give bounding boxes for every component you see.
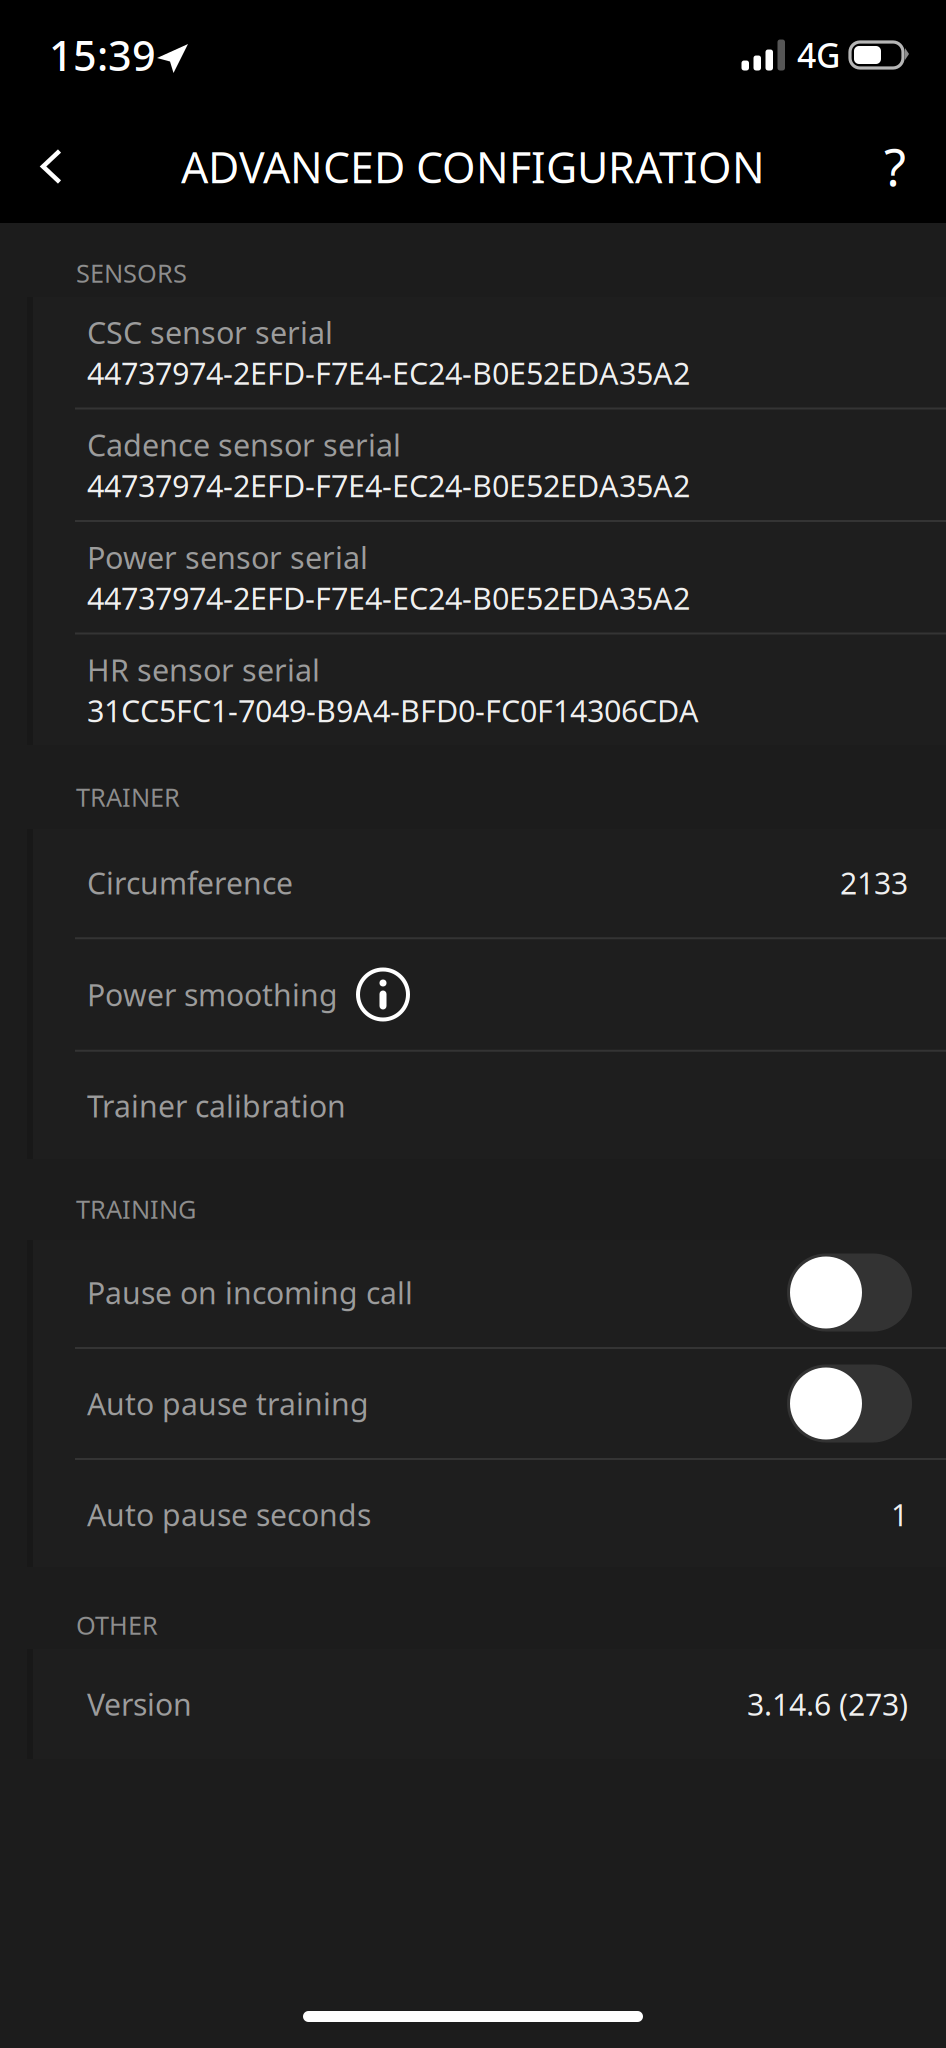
staticText: ? (884, 133, 906, 200)
button[interactable]: Trainer calibration (33, 1052, 946, 1160)
staticText: 3.14.6 (273) (747, 1684, 908, 1724)
staticText: 31CC5FC1-7049-B9A4-BFD0-FC0F14306CDA (87, 690, 699, 730)
button[interactable]: Back (0, 110, 100, 223)
staticText: Auto pause training (87, 1383, 369, 1423)
staticText: 1 (891, 1494, 908, 1534)
button[interactable]: Power sensor serial (33, 522, 946, 632)
button[interactable]: Pause on incoming call (33, 1238, 946, 1347)
staticText: ADVANCED CONFIGURATION (181, 138, 765, 195)
staticText: 44737974-2EFD-F7E4-EC24-B0E52EDA35A2 (87, 352, 690, 393)
button[interactable]: Power smoothing (33, 939, 946, 1050)
staticText: OTHER (76, 1608, 158, 1634)
staticText: Circumference (87, 863, 293, 903)
button[interactable]: Version (33, 1649, 946, 1759)
button[interactable]: Circumference (33, 828, 946, 937)
staticText: SENSORS (76, 256, 187, 282)
staticText: Power sensor serial (87, 537, 368, 577)
button[interactable]: HR sensor serial (33, 634, 946, 745)
button[interactable]: Auto pause seconds (33, 1460, 946, 1569)
staticText: 15:39 (49, 28, 156, 82)
staticText: CSC sensor serial (87, 312, 333, 352)
staticText: 44737974-2EFD-F7E4-EC24-B0E52EDA35A2 (87, 577, 690, 618)
button[interactable]: Help (851, 113, 946, 219)
staticText: 2133 (840, 863, 908, 903)
staticText: Version (87, 1684, 192, 1724)
staticText: HR sensor serial (87, 649, 320, 690)
staticText: Trainer calibration (87, 1086, 346, 1126)
staticText: 4G (797, 33, 841, 77)
staticText: Cadence sensor serial (87, 424, 401, 465)
staticText: TRAINING (76, 1192, 196, 1218)
staticText: Pause on incoming call (87, 1272, 413, 1312)
button[interactable]: Cadence sensor serial (33, 409, 946, 520)
staticText: 44737974-2EFD-F7E4-EC24-B0E52EDA35A2 (87, 465, 690, 505)
staticText: TRAINER (76, 780, 180, 806)
button[interactable]: Auto pause training (33, 1349, 946, 1458)
button[interactable]: CSC sensor serial (33, 297, 946, 407)
staticText: Power smoothing (87, 974, 338, 1014)
staticText: Auto pause seconds (87, 1494, 371, 1534)
